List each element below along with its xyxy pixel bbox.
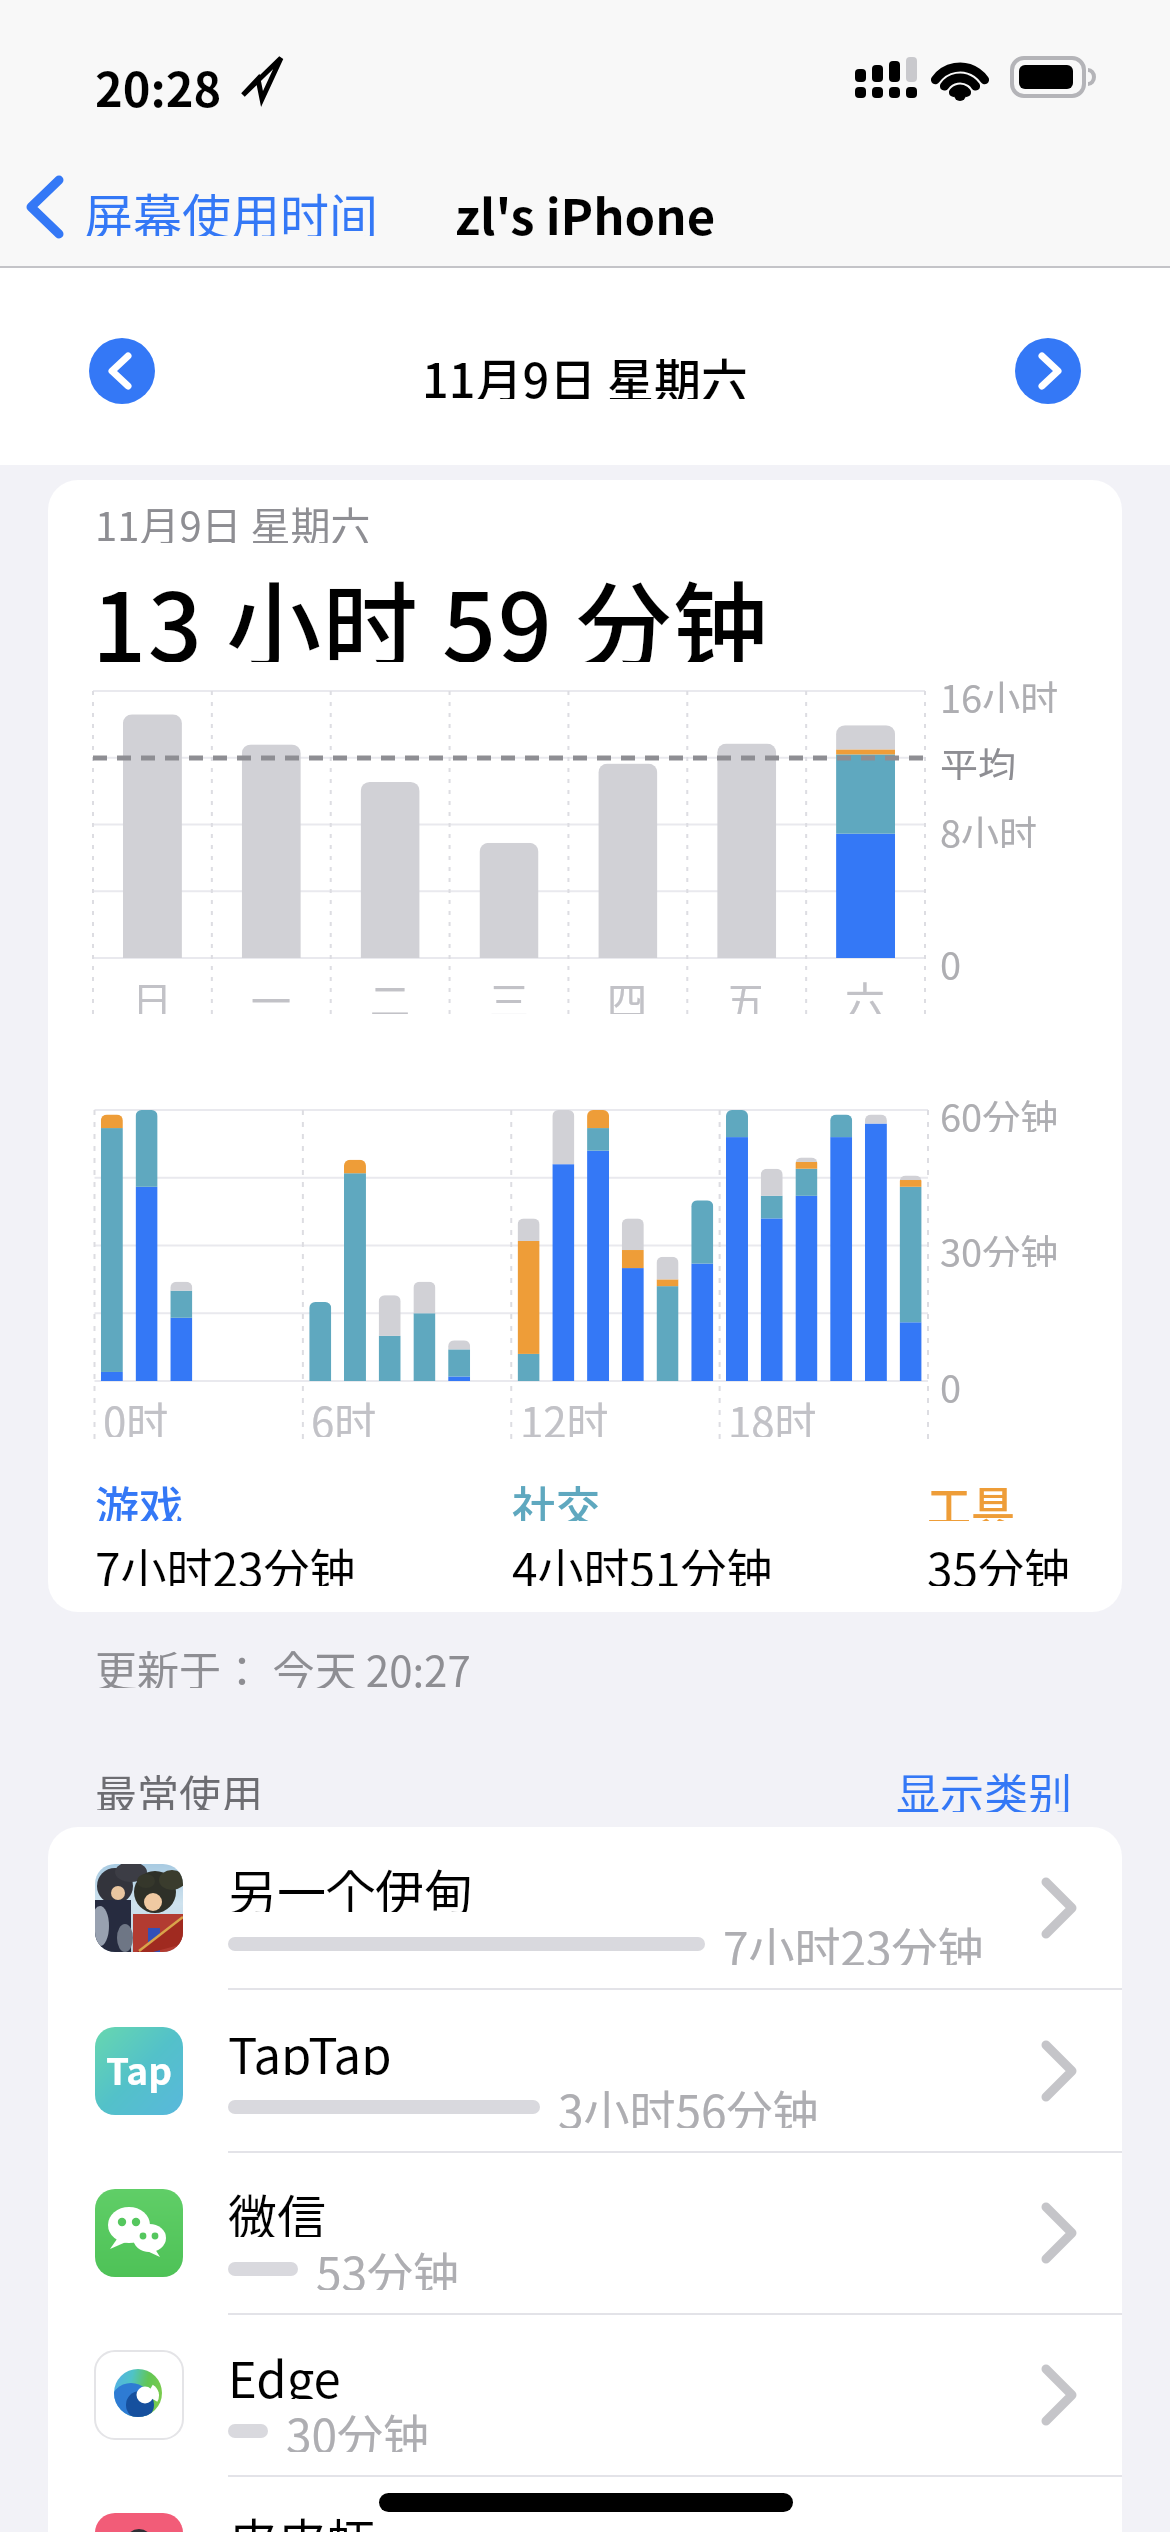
staticText: 三 [489, 970, 529, 1014]
button[interactable] [48, 1827, 1122, 1989]
staticText: 20:28 [95, 52, 222, 108]
staticText: 18时 [728, 1389, 817, 1437]
staticText: 微信 [228, 2179, 327, 2237]
button[interactable] [48, 1990, 1122, 2152]
staticText: 7小时23分钟 [723, 1913, 984, 1965]
button[interactable] [1015, 338, 1081, 404]
button[interactable] [48, 2476, 1122, 2532]
staticText: 一 [251, 970, 291, 1014]
staticText: 6时 [311, 1389, 377, 1437]
staticText: 13 小时 59 分钟 [92, 552, 770, 662]
staticText: 日 [132, 970, 172, 1014]
staticText: 更新于： 今天 20:27 [95, 1638, 471, 1688]
staticText: 60分钟 [940, 1088, 1059, 1132]
staticText: 显示类别 [896, 1760, 1072, 1812]
staticText: 11月9日 星期六 [95, 495, 371, 543]
staticText: 7小时23分钟 [95, 1534, 356, 1586]
staticText: 社交 [512, 1473, 600, 1521]
staticText: 另一个伊甸 [228, 1854, 474, 1912]
staticText: 四 [607, 970, 647, 1014]
staticText: 30分钟 [940, 1223, 1059, 1267]
staticText: 3小时56分钟 [558, 2076, 819, 2128]
button[interactable] [48, 2314, 1122, 2476]
staticText: TapTap [228, 2017, 392, 2075]
staticText: 最常使用 [95, 1762, 264, 1810]
staticText: 4小时51分钟 [512, 1534, 773, 1586]
staticText: 0时 [103, 1389, 169, 1437]
staticText: 12时 [520, 1389, 609, 1437]
staticText: 二 [370, 970, 410, 1014]
button[interactable] [48, 2152, 1122, 2314]
staticText: 8小时 [940, 804, 1038, 848]
staticText: 0 [940, 1359, 962, 1403]
staticText: 53分钟 [316, 2238, 460, 2290]
staticText: 16小时 [940, 669, 1059, 713]
staticText: 六 [845, 970, 885, 1014]
staticText: 11月9日 星期六 [422, 343, 748, 399]
staticText: Tap [106, 2042, 173, 2094]
staticText: 皮皮虾 [228, 2503, 376, 2532]
staticText: 屏幕使用时间 [84, 178, 379, 236]
staticText: 平均 [940, 736, 1017, 780]
staticText: Edge [228, 2341, 341, 2399]
staticText: 五 [726, 970, 766, 1014]
staticText: 游戏 [95, 1473, 183, 1521]
button[interactable] [89, 338, 155, 404]
staticText: 35分钟 [927, 1534, 1071, 1586]
staticText: zl's iPhone [455, 178, 716, 236]
staticText: 0 [940, 936, 962, 980]
button[interactable]: 屏幕使用时间 [84, 178, 404, 236]
staticText: 30分钟 [286, 2400, 430, 2452]
staticText: 工具 [927, 1473, 1015, 1521]
button[interactable]: 显示类别 [800, 1760, 1072, 1812]
